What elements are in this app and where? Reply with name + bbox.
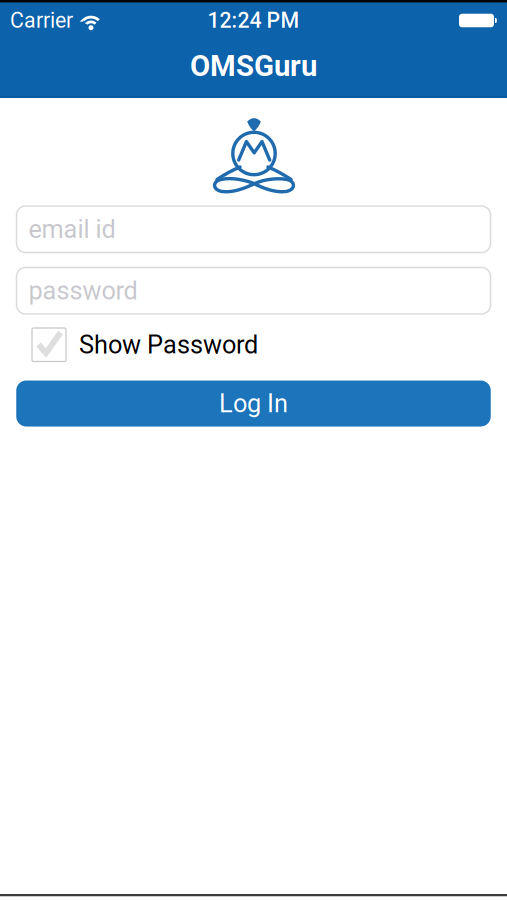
- staticText: email id: [28, 215, 115, 244]
- button[interactable]: Show Password checkbox: [32, 328, 66, 361]
- button[interactable]: Log In: [16, 380, 491, 426]
- staticText: Show Password: [79, 330, 258, 359]
- staticText: password: [28, 276, 137, 305]
- staticText: Log In: [219, 389, 288, 418]
- staticText: Carrier: [10, 8, 73, 33]
- button[interactable]: email id: [16, 206, 490, 252]
- staticText: OMSGuru: [190, 49, 317, 83]
- staticText: 12:24 PM: [207, 8, 299, 33]
- button[interactable]: password: [16, 267, 490, 314]
